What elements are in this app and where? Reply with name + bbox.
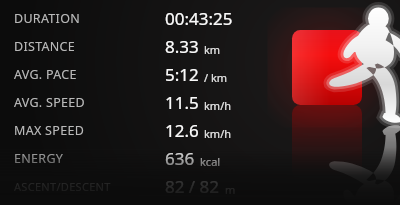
staticText: / km — [204, 70, 228, 85]
staticText: AVG. SPEED — [14, 94, 86, 111]
button[interactable]: DISTANCE — [0, 32, 400, 60]
button[interactable]: MAX SPEED — [0, 116, 400, 144]
button[interactable]: AVG. SPEED — [0, 88, 400, 116]
staticText: 5:12 — [165, 63, 199, 86]
staticText: km/h — [204, 98, 232, 113]
button[interactable]: ASCENT/DESCENT — [0, 172, 400, 200]
staticText: 8.33 — [165, 35, 199, 58]
staticText: DURATION — [14, 10, 81, 27]
button[interactable]: AVG. PACE — [0, 60, 400, 88]
staticText: 11.5 — [165, 91, 199, 114]
staticText: AVG. PACE — [14, 66, 77, 83]
staticText: 636 — [165, 147, 195, 170]
staticText: 82 / 82 — [165, 175, 220, 198]
staticText: km — [204, 42, 221, 57]
staticText: kcal — [200, 154, 221, 169]
button[interactable]: ENERGY — [0, 144, 400, 172]
button[interactable]: Running activity — [0, 0, 400, 205]
staticText: ASCENT/DESCENT — [14, 179, 111, 194]
staticText: 12.6 — [165, 119, 199, 142]
staticText: 00:43:25 — [165, 7, 233, 30]
staticText: km/h — [204, 126, 232, 141]
staticText: ENERGY — [14, 150, 64, 167]
button[interactable]: DURATION — [0, 4, 400, 32]
staticText: m — [225, 182, 236, 197]
staticText: DISTANCE — [14, 38, 76, 55]
staticText: MAX SPEED — [14, 122, 85, 139]
